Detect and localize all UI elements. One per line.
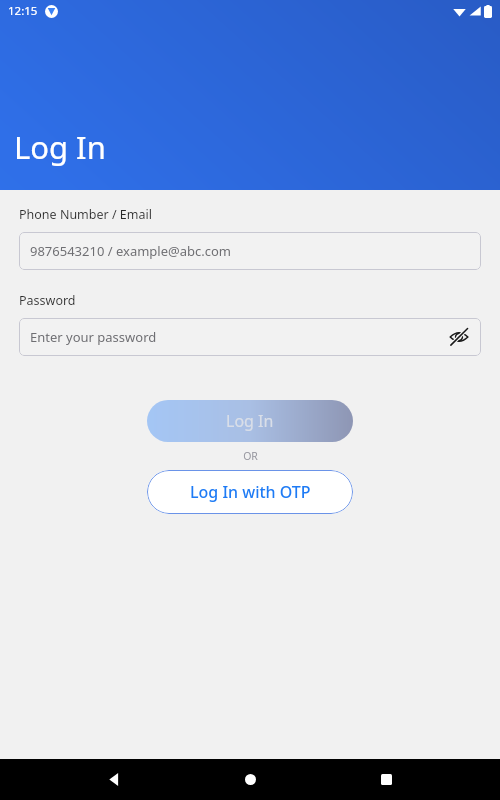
- staticText: Phone Number / Email: [19, 206, 152, 223]
- button[interactable]: Show password: [446, 324, 472, 350]
- staticText: Log In: [226, 410, 274, 432]
- button[interactable]: Home: [228, 759, 272, 800]
- staticText: 9876543210 / example@abc.com: [30, 242, 231, 260]
- button[interactable]: Enter your password: [19, 318, 481, 356]
- staticText: Log In with OTP: [190, 481, 311, 503]
- staticText: Password: [19, 292, 76, 309]
- staticText: Log In: [14, 126, 106, 168]
- staticText: 12:15: [8, 3, 38, 19]
- staticText: Enter your password: [30, 328, 157, 346]
- staticText: OR: [243, 449, 258, 463]
- button[interactable]: Recent apps: [364, 759, 408, 800]
- button[interactable]: Log In: [147, 400, 353, 442]
- button[interactable]: Back: [92, 759, 136, 800]
- button[interactable]: Log In with OTP: [147, 470, 353, 514]
- button[interactable]: 9876543210 / example@abc.com: [19, 232, 481, 270]
